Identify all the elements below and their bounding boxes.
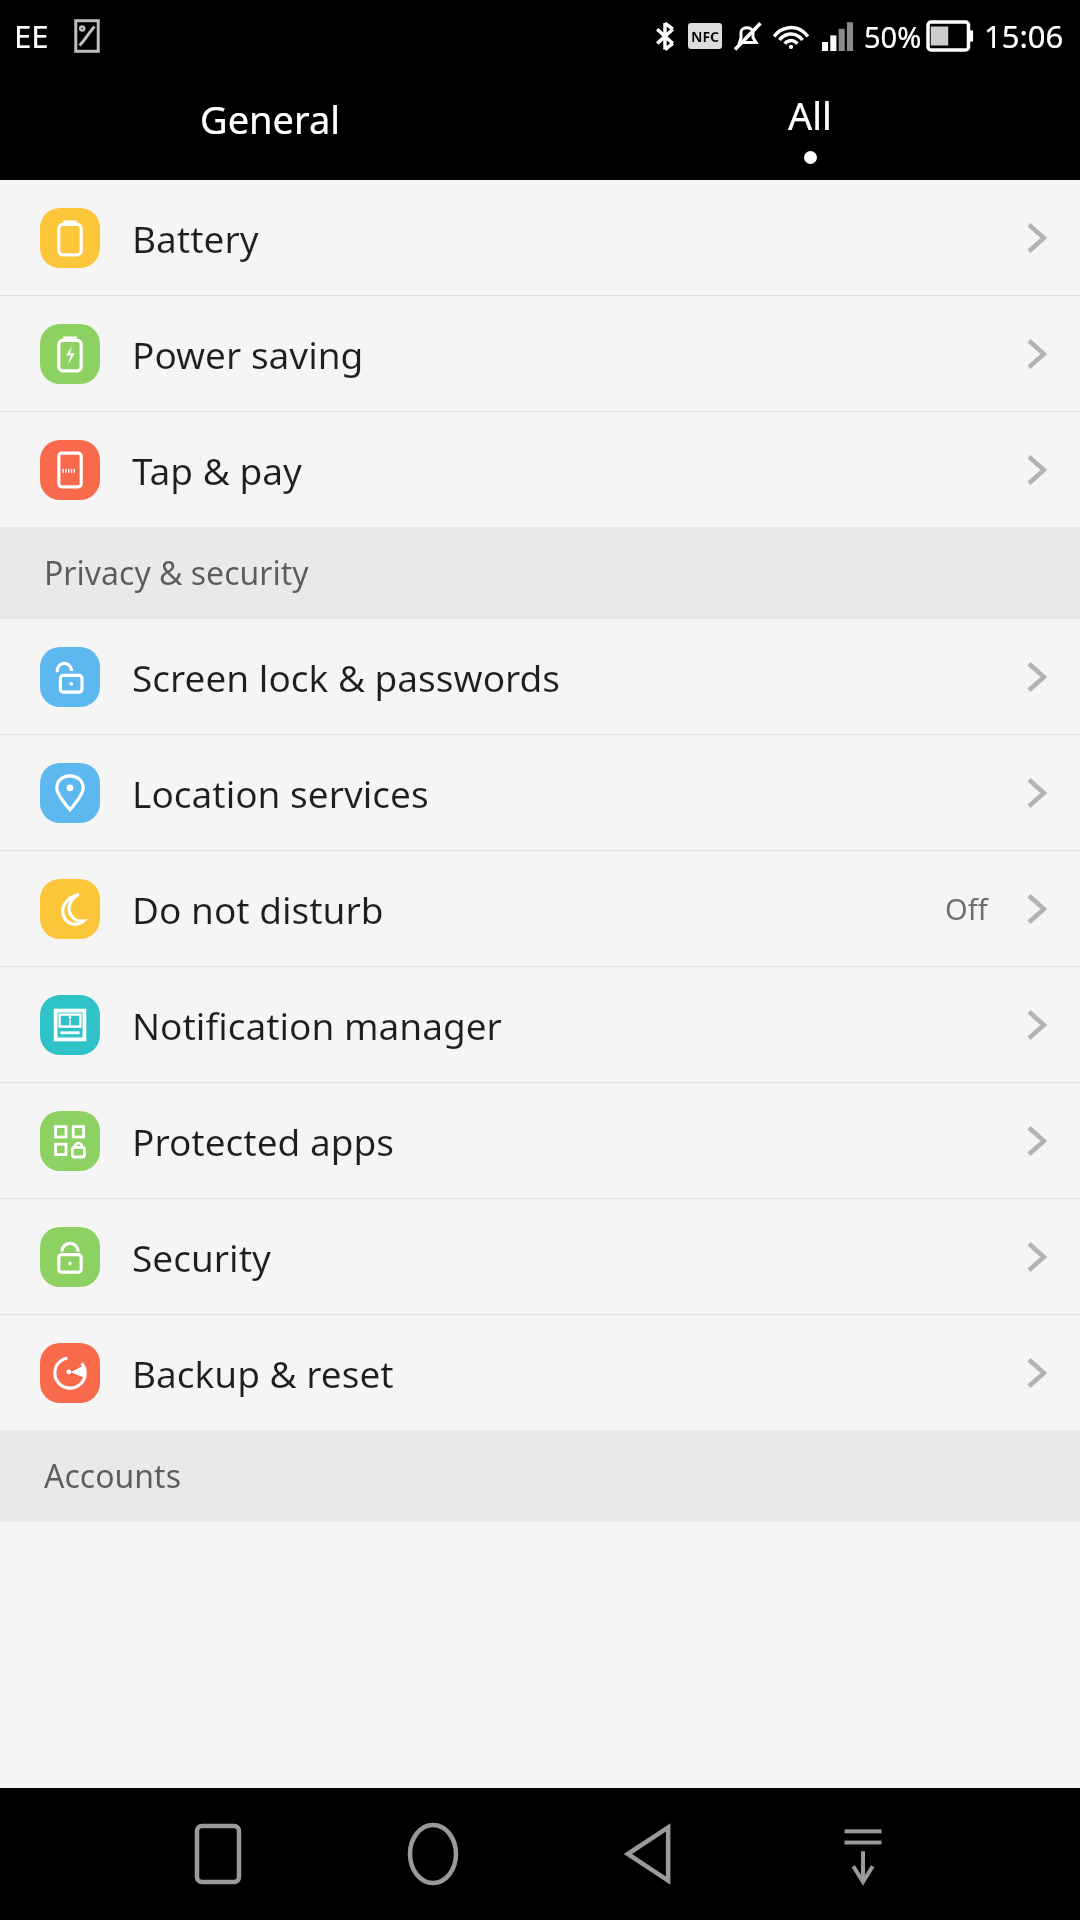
staticText: NFC [691,27,720,46]
staticText: Backup & reset [132,1348,1014,1398]
button[interactable]: Location services [0,735,1080,850]
button[interactable]: Recent apps [110,1788,325,1920]
staticText: Privacy & security [44,551,309,595]
button[interactable]: Power saving [0,296,1080,411]
staticText: Protected apps [132,1116,1014,1166]
button[interactable]: Do not disturb [0,851,1080,966]
button[interactable]: Screen lock & passwords [0,619,1080,734]
staticText: 50% [864,17,922,56]
button[interactable]: Back [540,1788,755,1920]
button[interactable]: Security [0,1199,1080,1314]
staticText: 15:06 [984,15,1064,57]
button[interactable]: Home [325,1788,540,1920]
staticText: Tap & pay [132,445,1014,495]
button[interactable]: Backup & reset [0,1315,1080,1430]
staticText: Off [945,889,988,928]
button[interactable]: Notification manager [0,967,1080,1082]
staticText: Battery [132,213,1014,263]
staticText: General [200,93,341,145]
staticText: Location services [132,768,1014,818]
button[interactable]: All [540,72,1080,180]
button[interactable]: Tap & pay [0,412,1080,527]
staticText: Screen lock & passwords [132,652,1014,702]
staticText: EE [14,15,49,57]
staticText: Accounts [44,1454,181,1498]
staticText: Notification manager [132,1000,1014,1050]
button[interactable]: General [0,72,540,180]
button[interactable]: Hide navigation bar [755,1788,970,1920]
staticText: Security [132,1232,1014,1282]
staticText: All [788,89,832,141]
staticText: Power saving [132,329,1014,379]
button[interactable]: Battery [0,180,1080,295]
button[interactable]: Protected apps [0,1083,1080,1198]
staticText: Do not disturb [132,884,945,934]
